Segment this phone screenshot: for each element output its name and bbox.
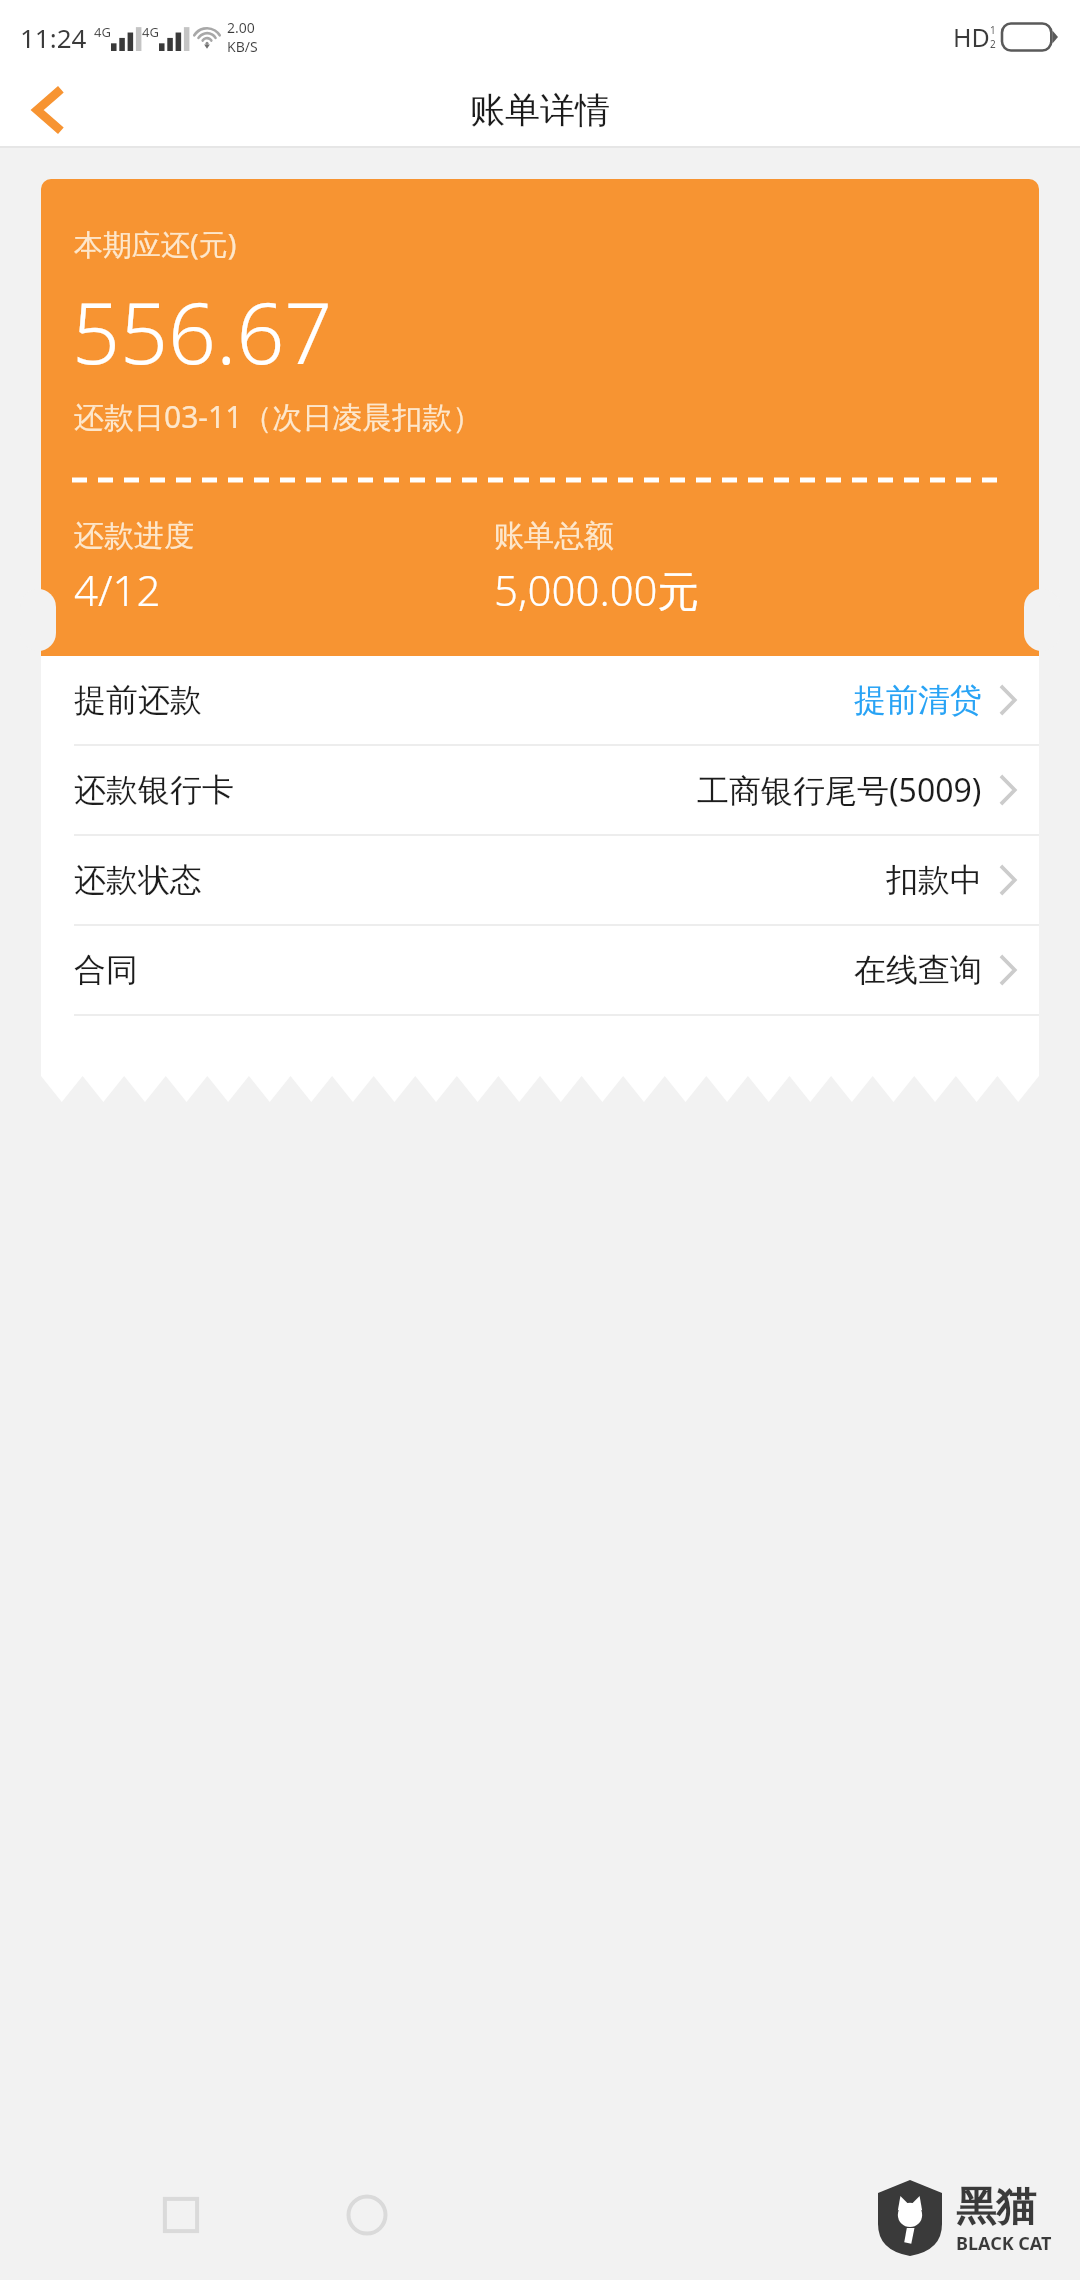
staticText: 4G [142,23,159,41]
staticText: 提前清贷 [854,680,982,720]
staticText: 扣款中 [886,860,982,900]
button[interactable]: 合同 [41,926,1039,1014]
button[interactable]: 还款状态 [41,836,1039,924]
staticText: 还款进度 [74,517,194,555]
staticText: 提前还款 [74,680,202,720]
staticText: 账单总额 [494,517,614,555]
staticText: BLACK CAT [956,2231,1052,2256]
staticText: 1 [990,23,996,37]
button[interactable]: Back [0,74,96,146]
staticText: 还款银行卡 [74,770,234,810]
button[interactable]: Home [342,2190,392,2240]
staticText: 黑猫 [956,2181,1036,2231]
staticText: 2.00 [227,18,255,37]
staticText: 2 [990,37,996,51]
staticText: HD [953,20,990,54]
button[interactable]: 提前还款 [41,656,1039,744]
staticText: 556.67 [72,274,333,388]
staticText: 5,000.00元 [494,561,700,618]
staticText: 账单详情 [470,88,610,132]
staticText: 还款日03-11（次日凌晨扣款） [74,396,483,437]
staticText: 4G [94,23,111,41]
staticText: 4/12 [74,561,161,618]
staticText: 在线查询 [854,950,982,990]
staticText: 11:24 [20,20,87,55]
staticText: 本期应还(元) [74,224,237,264]
staticText: KB/S [227,37,258,56]
staticText: 还款状态 [74,860,202,900]
staticText: 合同 [74,950,138,990]
button[interactable]: 还款银行卡 [41,746,1039,834]
staticText: 工商银行尾号(5009) [697,768,982,812]
button[interactable]: Recents [158,2192,204,2238]
